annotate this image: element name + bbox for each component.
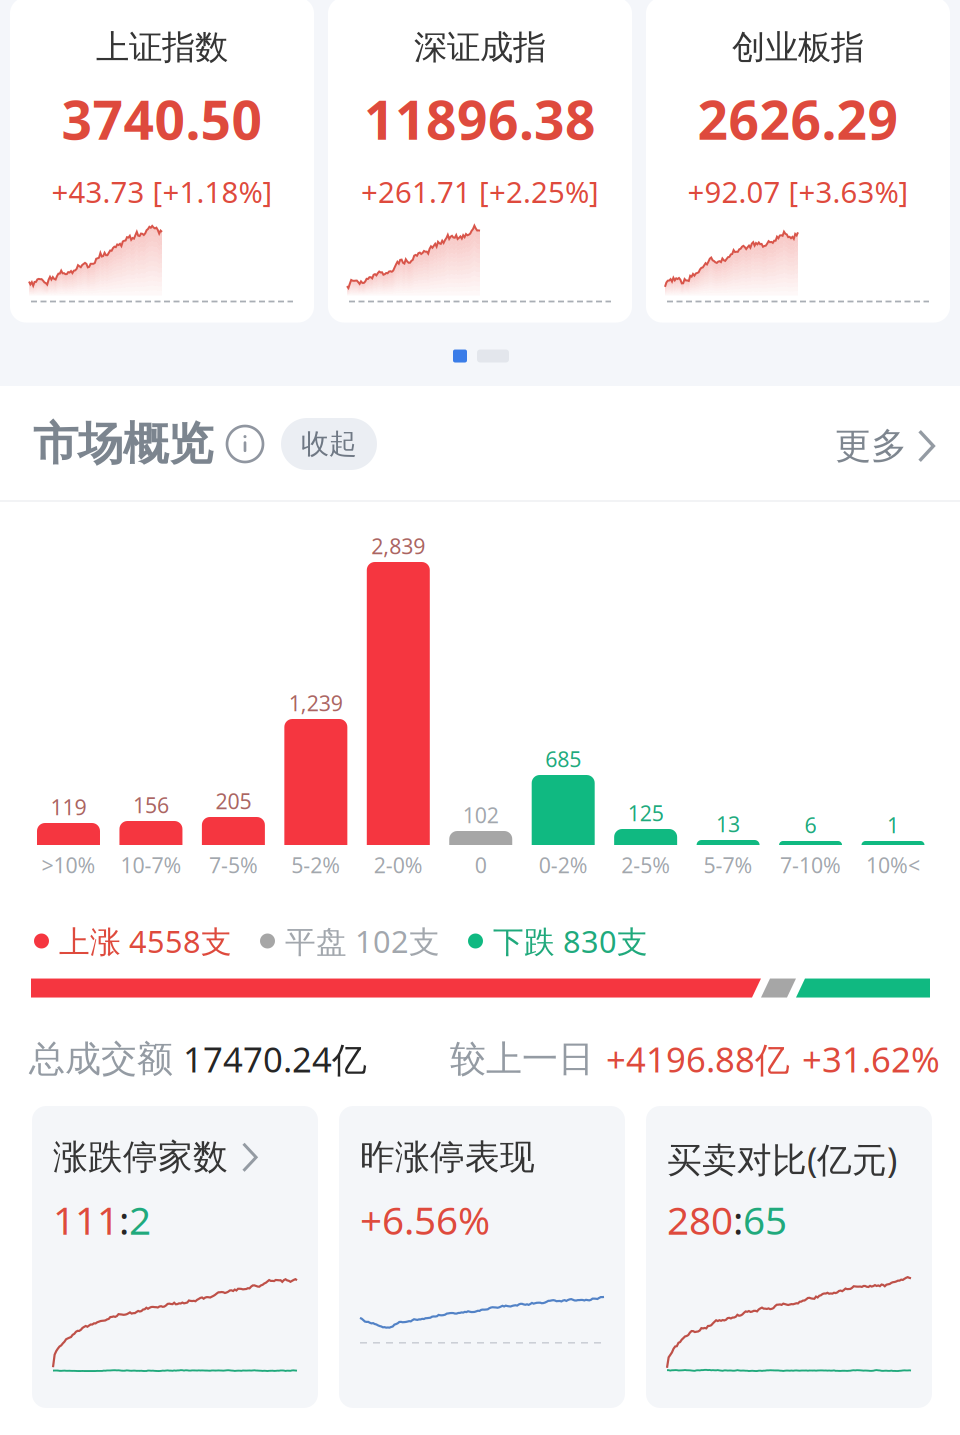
staticText: 7-5% [209, 851, 258, 879]
button[interactable]: 说明 [227, 426, 263, 462]
staticText: +4196.88亿 [606, 1036, 790, 1082]
staticText: 2-0% [374, 851, 423, 879]
staticText: 买卖对比(亿元) [667, 1136, 897, 1182]
staticText: 125 [628, 799, 664, 827]
button[interactable]: 创业板指 [646, 0, 950, 322]
staticText: +31.62% [802, 1036, 940, 1082]
staticText: 119 [50, 793, 86, 821]
staticText: +261.71 [+2.25%] [361, 172, 599, 211]
staticText: 2 [129, 1194, 151, 1245]
staticText: 1,239 [289, 689, 343, 717]
staticText: 较上一日 [450, 1037, 594, 1081]
staticText: 创业板指 [732, 27, 864, 68]
staticText: 昨涨停表现 [360, 1136, 535, 1179]
staticText: 10%< [866, 851, 920, 879]
staticText: : [119, 1194, 129, 1245]
staticText: 市场概览 [33, 416, 213, 472]
staticText: 上证指数 [96, 27, 228, 68]
staticText: 深证成指 [414, 27, 546, 68]
button[interactable]: 深证成指 [328, 0, 632, 322]
staticText: 205 [215, 787, 251, 815]
staticText: 5-7% [704, 851, 753, 879]
staticText: 收起 [301, 427, 357, 461]
staticText: 2,839 [371, 532, 425, 560]
staticText: 156 [133, 791, 169, 819]
staticText: +6.56% [360, 1194, 490, 1245]
staticText: 5-2% [291, 851, 340, 879]
button[interactable]: 收起 [281, 418, 377, 470]
button[interactable]: 上证指数 [10, 0, 314, 322]
staticText: 111 [53, 1194, 119, 1245]
staticText: 17470.24亿 [183, 1036, 367, 1082]
staticText: 平盘 102支 [285, 921, 440, 961]
staticText: 下跌 830支 [493, 921, 648, 961]
staticText: 7-10% [780, 851, 841, 879]
staticText: +92.07 [+3.63%] [687, 172, 908, 211]
button[interactable]: 买卖对比(亿元) [646, 1106, 932, 1408]
staticText: 13 [716, 810, 740, 838]
staticText: 3740.50 [61, 84, 262, 154]
button[interactable]: 涨跌停家数 [32, 1106, 318, 1408]
staticText: 102 [463, 801, 499, 829]
button[interactable]: 昨涨停表现 [339, 1106, 625, 1408]
staticText: 上涨 4558支 [59, 921, 232, 961]
staticText: 685 [545, 745, 581, 773]
staticText: >10% [41, 851, 95, 879]
staticText: 11896.38 [364, 84, 596, 154]
staticText: 1 [887, 811, 899, 839]
staticText: 65 [743, 1194, 787, 1245]
staticText: : [733, 1194, 743, 1245]
staticText: 总成交额 [29, 1037, 173, 1081]
staticText: 2-5% [621, 851, 670, 879]
staticText: 0 [475, 851, 487, 879]
staticText: 涨跌停家数 [53, 1136, 228, 1179]
staticText: +43.73 [+1.18%] [51, 172, 272, 211]
staticText: 280 [667, 1194, 733, 1245]
staticText: 6 [804, 811, 816, 839]
button[interactable]: 更多 [835, 424, 935, 468]
staticText: 2626.29 [697, 84, 898, 154]
staticText: 更多 [835, 424, 907, 468]
staticText: 0-2% [539, 851, 588, 879]
staticText: 10-7% [120, 851, 181, 879]
